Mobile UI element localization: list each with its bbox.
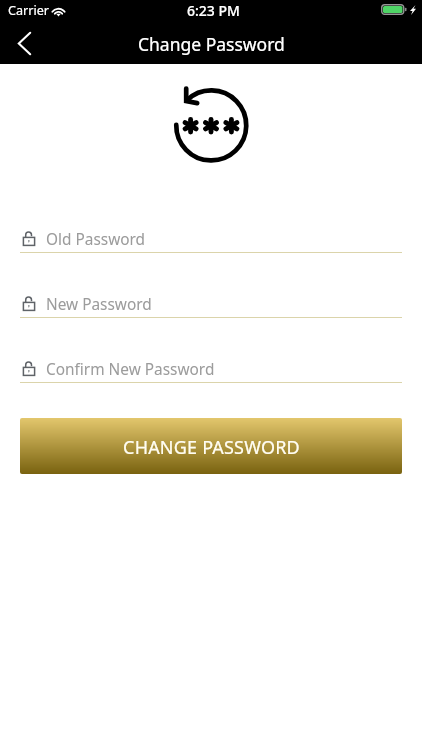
staticText: Old Password bbox=[46, 229, 146, 250]
button[interactable]: CHANGE PASSWORD bbox=[20, 418, 402, 474]
staticText: 6:23 PM bbox=[187, 1, 240, 20]
button[interactable]: Back bbox=[4, 23, 44, 63]
button[interactable]: Confirm New Password bbox=[20, 356, 402, 383]
button[interactable]: Old Password bbox=[20, 226, 402, 253]
staticText: CHANGE PASSWORD bbox=[123, 435, 300, 460]
staticText: Confirm New Password bbox=[46, 359, 215, 380]
staticText: Carrier bbox=[8, 2, 49, 19]
staticText: New Password bbox=[46, 294, 152, 315]
button[interactable]: New Password bbox=[20, 291, 402, 318]
staticText: Change Password bbox=[138, 32, 285, 56]
